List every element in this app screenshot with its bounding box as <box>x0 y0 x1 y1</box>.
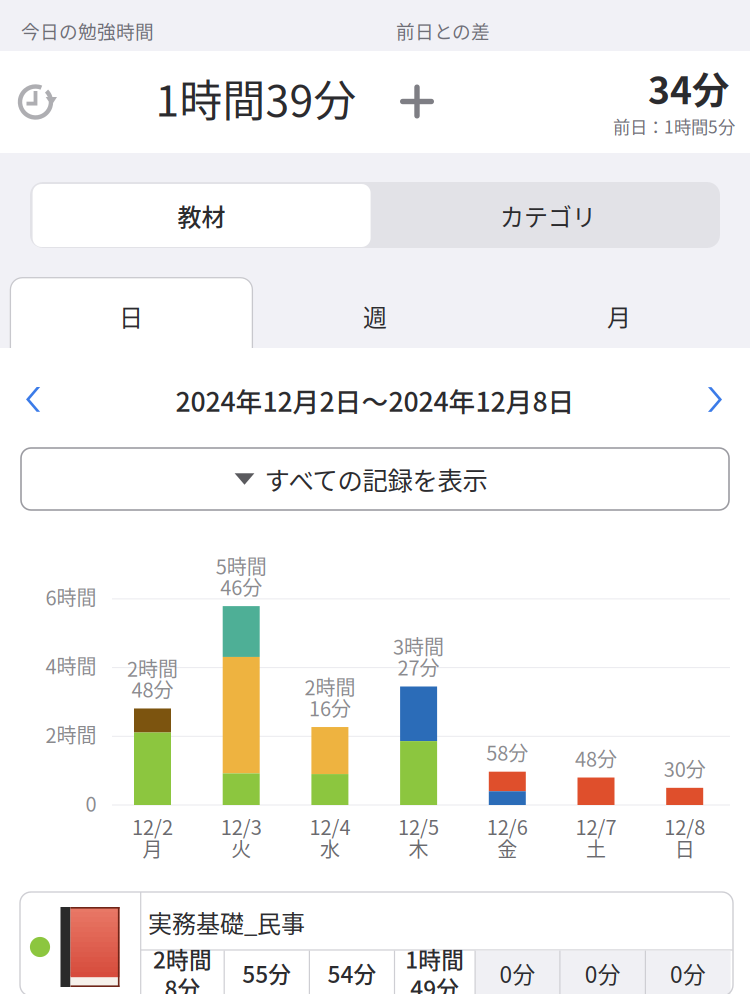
staticText: 実務基礎_民事 <box>148 905 305 939</box>
staticText: 5時間 <box>216 551 267 580</box>
staticText: 12/6 <box>487 812 528 841</box>
staticText: 日 <box>675 834 695 863</box>
staticText: 月 <box>607 299 631 333</box>
staticText: カテゴリ <box>500 198 596 233</box>
staticText: 46分 <box>220 572 262 601</box>
staticText: 27分 <box>398 652 440 681</box>
staticText: 2時間 <box>153 942 212 975</box>
staticText: 48分 <box>575 743 617 772</box>
staticText: 水 <box>320 834 340 863</box>
button[interactable]: 次の週 <box>684 372 746 426</box>
staticText: 54分 <box>327 957 376 989</box>
button[interactable]: 日 <box>10 280 252 351</box>
staticText: 6時間 <box>45 582 96 611</box>
staticText: 49分 <box>410 971 459 994</box>
button[interactable]: カテゴリ <box>379 184 717 247</box>
staticText: 1時間 <box>405 942 464 975</box>
staticText: 2時間 <box>45 720 96 749</box>
staticText: 55分 <box>242 957 291 989</box>
staticText: 金 <box>497 834 517 863</box>
staticText: 12/4 <box>309 812 350 841</box>
button[interactable]: 前の週 <box>2 372 64 426</box>
button[interactable]: 週 <box>254 280 496 351</box>
staticText: 12/7 <box>575 812 616 841</box>
staticText: 3時間 <box>393 632 444 661</box>
button[interactable]: すべての記録を表示 <box>21 448 729 510</box>
staticText: 4時間 <box>45 651 96 680</box>
staticText: 12/8 <box>664 812 705 841</box>
staticText: 前日との差 <box>396 17 490 44</box>
staticText: 16分 <box>309 693 351 722</box>
staticText: 0 <box>85 788 96 817</box>
staticText: 月 <box>142 834 162 863</box>
staticText: 今日の勉強時間 <box>21 17 154 44</box>
staticText: 48分 <box>131 674 173 703</box>
staticText: 12/3 <box>221 812 262 841</box>
staticText: 8分 <box>164 971 200 994</box>
staticText: 2時間 <box>127 654 178 683</box>
staticText: 2024年12月2日〜2024年12月8日 <box>175 381 574 419</box>
staticText: 日 <box>119 299 143 333</box>
staticText: 0分 <box>499 957 535 989</box>
staticText: 0分 <box>670 957 706 989</box>
button[interactable]: 月 <box>498 280 740 351</box>
staticText: 34分 <box>648 61 729 115</box>
staticText: 12/2 <box>132 812 173 841</box>
staticText: 2時間 <box>304 672 355 701</box>
staticText: 前日：1時間5分 <box>613 113 735 139</box>
staticText: 58分 <box>486 738 528 767</box>
staticText: 1時間39分 <box>155 67 356 129</box>
staticText: 12/5 <box>398 812 439 841</box>
staticText: 木 <box>409 834 429 863</box>
staticText: 火 <box>231 834 251 863</box>
staticText: 教材 <box>178 198 226 233</box>
staticText: 0分 <box>585 957 621 989</box>
staticText: 週 <box>363 299 387 333</box>
button[interactable]: 教材 <box>33 184 371 247</box>
staticText: 30分 <box>664 754 706 783</box>
staticText: 土 <box>586 834 606 863</box>
staticText: すべての記録を表示 <box>264 461 487 497</box>
